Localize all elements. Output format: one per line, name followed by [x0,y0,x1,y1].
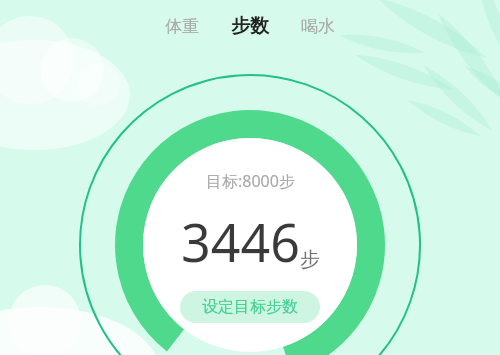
staticText: 设定目标步数 [202,297,298,317]
staticText: 目标:8000步 [206,170,295,192]
button[interactable]: 体重 [149,10,215,43]
button[interactable]: 步数 [215,8,285,44]
button[interactable]: 设定目标步数 [180,291,320,323]
staticText: 步 [300,247,320,272]
button[interactable]: 喝水 [285,10,351,43]
staticText: 3446 [181,206,300,277]
